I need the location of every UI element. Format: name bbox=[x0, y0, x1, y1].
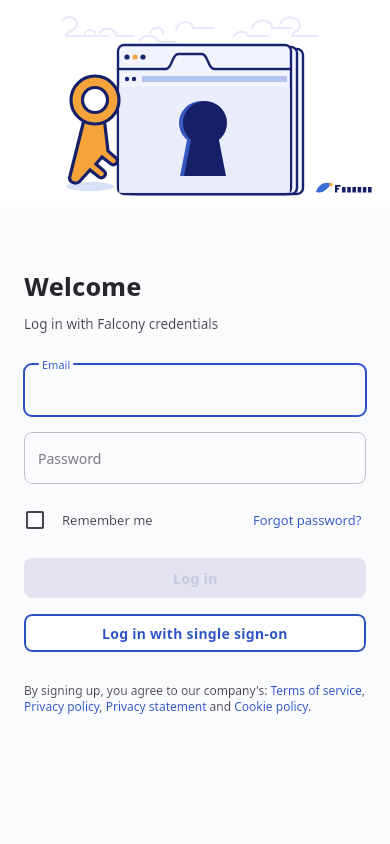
staticText: By signing up, you agree to our company'… bbox=[24, 682, 366, 714]
staticText: Log in bbox=[173, 569, 218, 588]
staticText: Password bbox=[38, 449, 102, 468]
button[interactable]: Log in bbox=[24, 558, 366, 598]
button[interactable]: Password bbox=[24, 432, 366, 484]
button[interactable]: Forgot password? bbox=[249, 507, 366, 533]
staticText: Welcome bbox=[24, 269, 142, 303]
button[interactable]: By signing up, you agree to our company'… bbox=[24, 682, 366, 714]
staticText: Email bbox=[42, 357, 71, 372]
staticText: Forgot password? bbox=[253, 511, 362, 529]
button[interactable]: Email bbox=[24, 358, 366, 416]
button[interactable]: Log in with single sign-on bbox=[24, 614, 366, 652]
staticText: Remember me bbox=[62, 511, 153, 529]
staticText: Log in with single sign-on bbox=[102, 624, 288, 643]
button[interactable]: Remember me bbox=[24, 507, 155, 533]
staticText: Log in with Falcony credentials bbox=[24, 315, 219, 333]
